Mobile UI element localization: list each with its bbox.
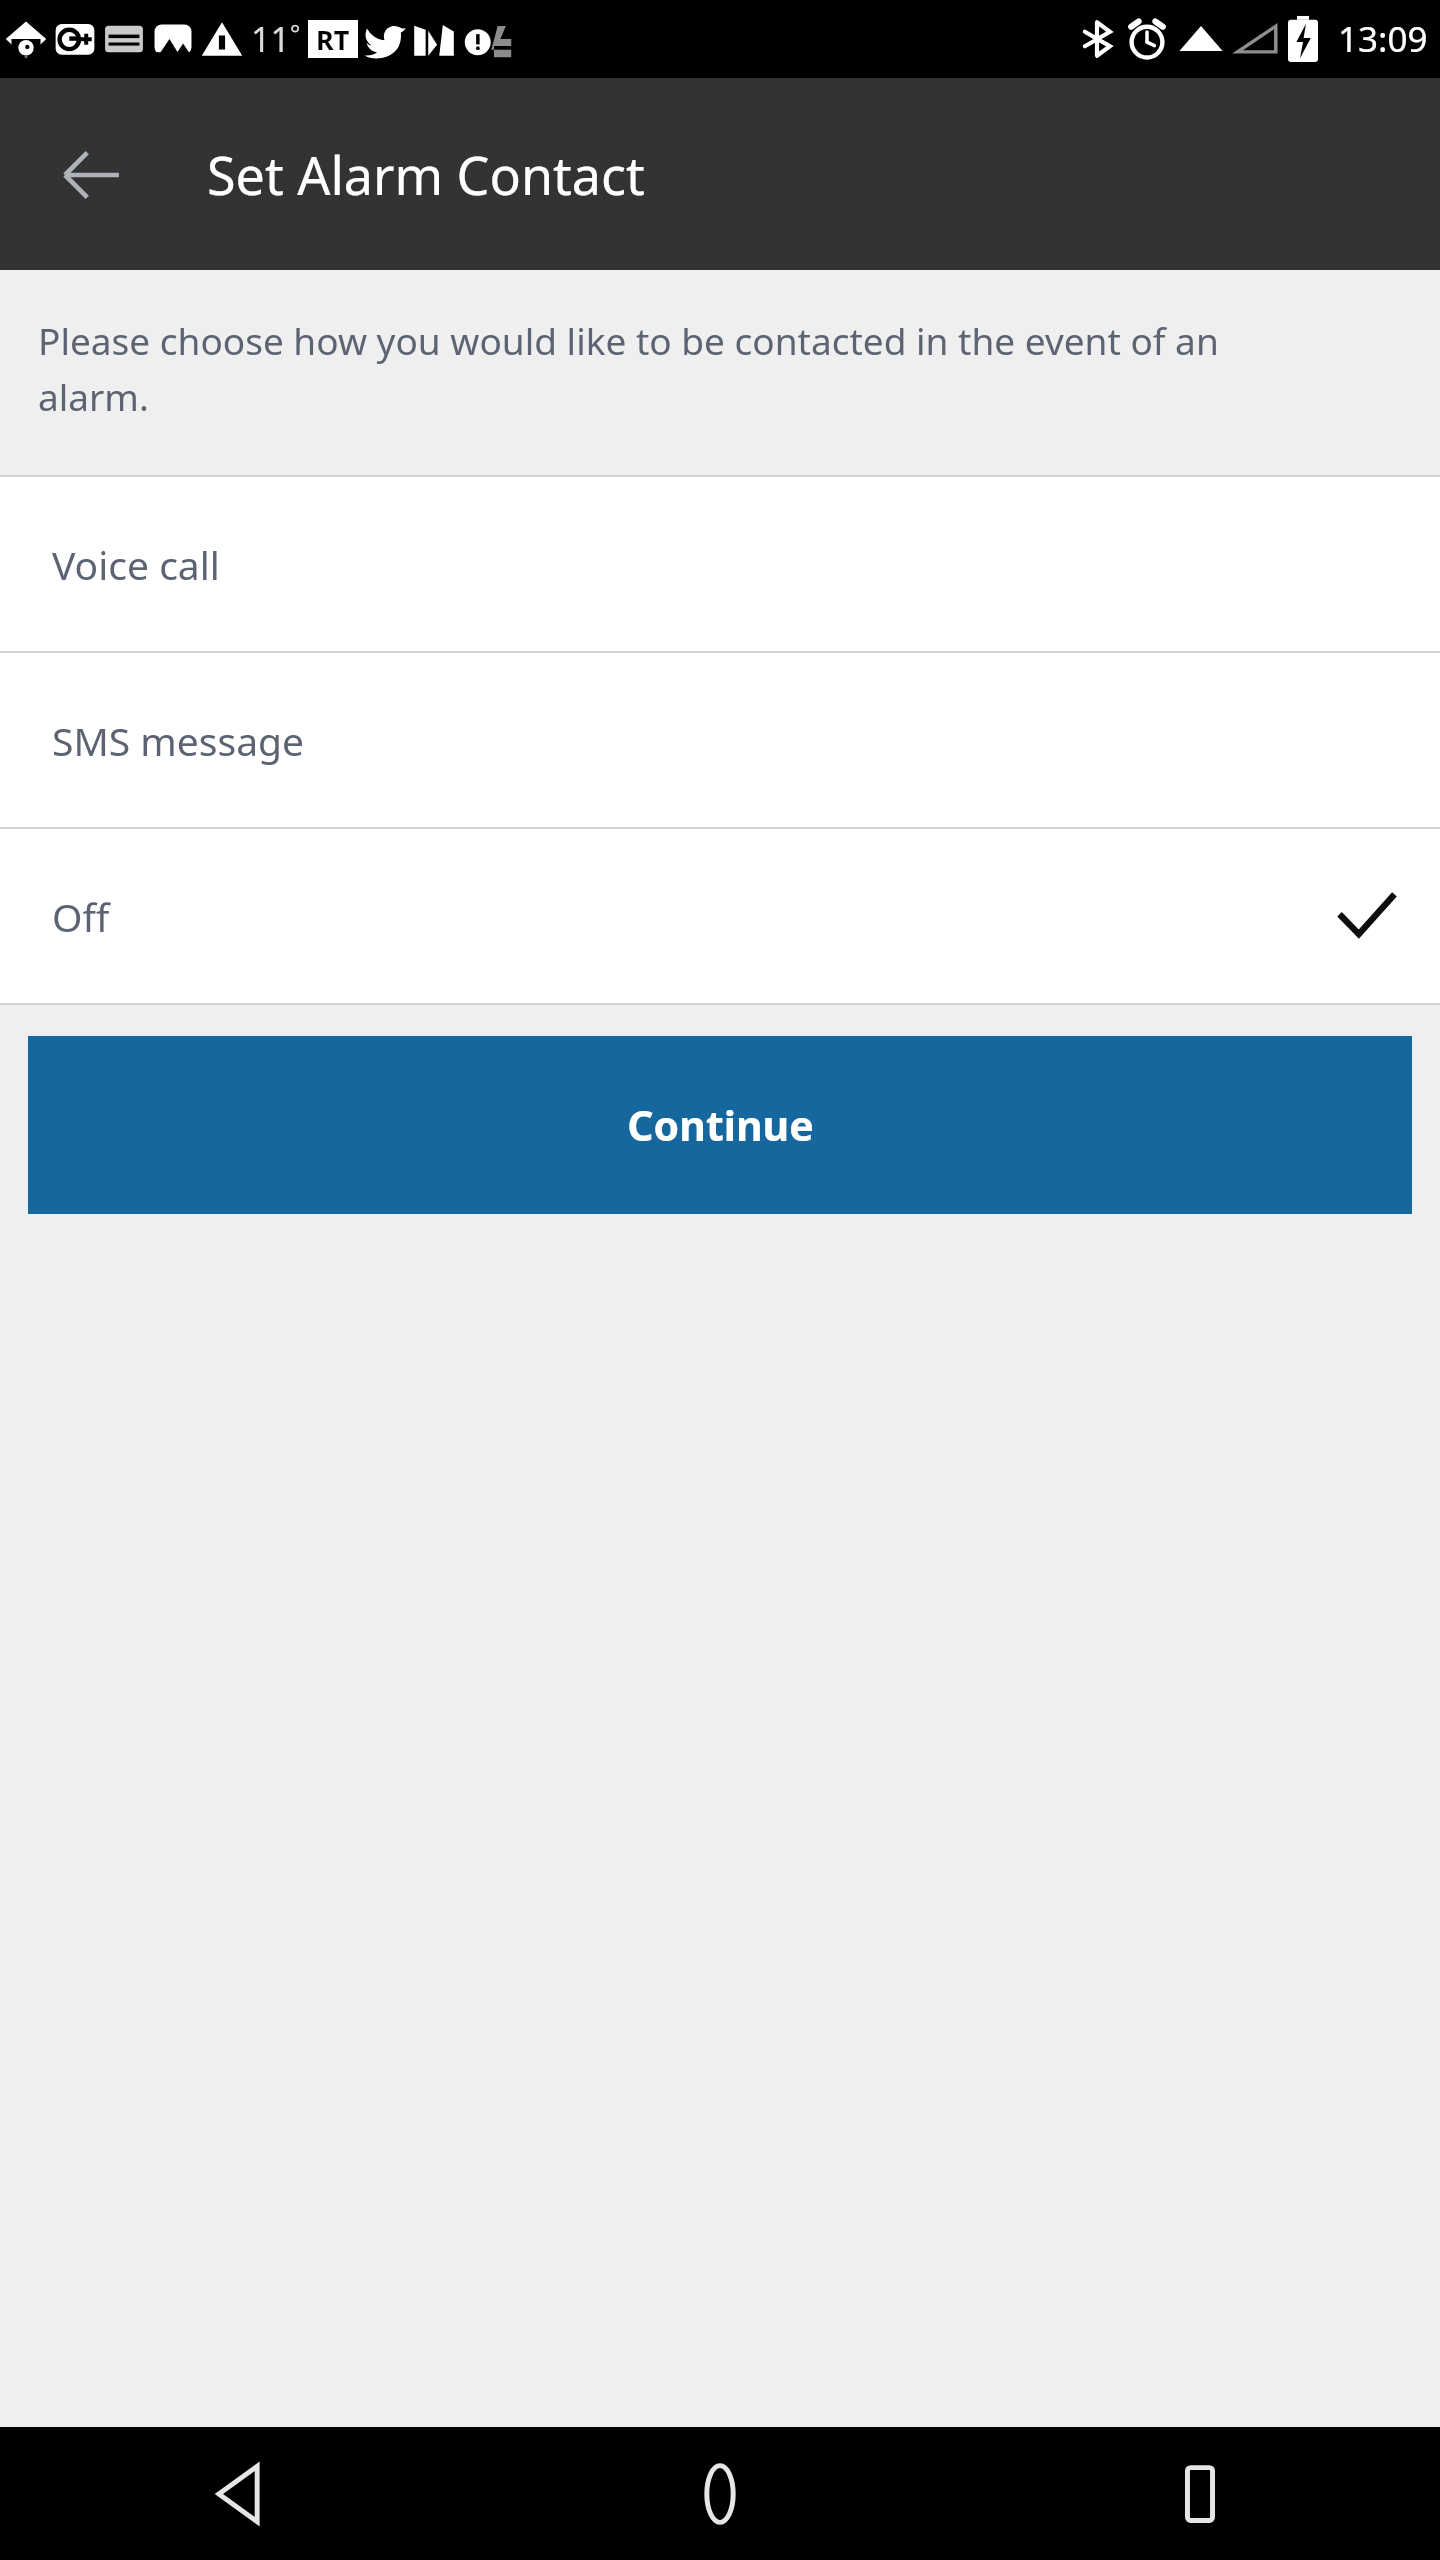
button[interactable]: Home — [480, 2427, 960, 2560]
button[interactable]: Back — [0, 2427, 480, 2560]
staticText: Set Alarm Contact — [207, 139, 645, 210]
staticText: Off — [52, 890, 110, 943]
staticText: SMS message — [52, 714, 305, 767]
staticText: Please choose how you would like to be c… — [38, 315, 1330, 422]
button[interactable]: Navigate up — [33, 117, 148, 232]
staticText: 13:09 — [1338, 15, 1428, 63]
staticText: Voice call — [52, 538, 220, 591]
staticText: 11 — [251, 16, 290, 62]
staticText: RT — [316, 21, 350, 58]
staticText: Continue — [627, 1097, 814, 1153]
button[interactable]: Recent apps — [960, 2427, 1440, 2560]
button[interactable]: SMS message — [0, 653, 1440, 827]
staticText: ° — [290, 16, 301, 49]
button[interactable]: Voice call — [0, 477, 1440, 651]
button[interactable]: Off — [0, 829, 1440, 1003]
button[interactable]: Continue — [28, 1036, 1412, 1214]
